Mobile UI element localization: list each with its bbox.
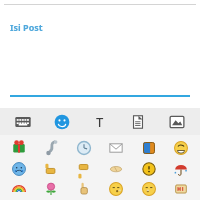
button[interactable]: Text format — [85, 109, 115, 135]
button[interactable]: Image — [162, 109, 192, 135]
button[interactable]: Flower — [37, 179, 65, 199]
button[interactable]: Pointing hand — [70, 179, 98, 199]
button[interactable]: Thumbs down — [70, 159, 98, 179]
button[interactable]: Grinning face — [167, 138, 195, 158]
button[interactable]: Umbrella — [167, 159, 195, 179]
button[interactable]: Handshake — [102, 159, 130, 179]
button[interactable]: Rainbow — [5, 179, 33, 199]
button[interactable]: Envelope — [102, 138, 130, 158]
button[interactable]: Keyboard — [8, 109, 38, 135]
button[interactable]: Tool — [37, 138, 65, 158]
button[interactable]: Hi badge — [167, 179, 195, 199]
button[interactable]: Kissing face — [102, 179, 130, 199]
button[interactable]: Crying face — [5, 159, 33, 179]
button[interactable]: Clock — [70, 138, 98, 158]
button[interactable]: Warning — [135, 159, 163, 179]
button[interactable]: Box — [135, 138, 163, 158]
button[interactable]: Emoji — [47, 109, 77, 135]
staticText: T — [96, 113, 104, 131]
button[interactable]: Thumbs up — [37, 159, 65, 179]
button[interactable]: Isi Post — [10, 21, 43, 33]
button[interactable]: Document — [123, 109, 153, 135]
button[interactable]: Kissing face — [135, 179, 163, 199]
button[interactable]: Gift — [5, 138, 33, 158]
